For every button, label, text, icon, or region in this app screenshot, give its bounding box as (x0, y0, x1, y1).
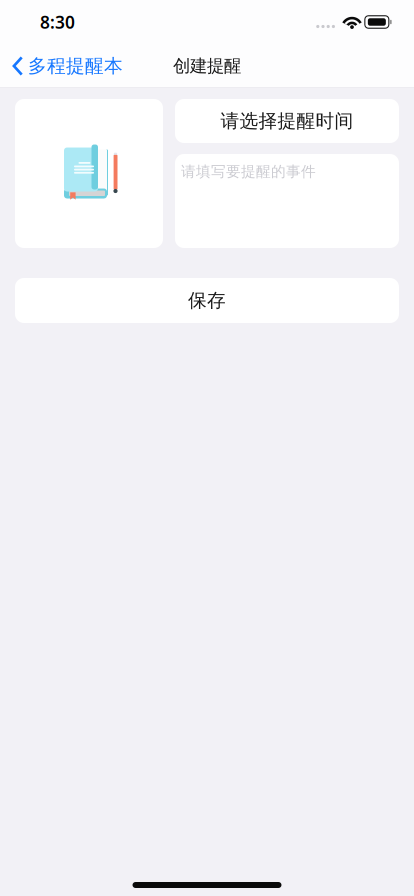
button[interactable]: 请选择提醒时间 (175, 99, 399, 143)
staticText: 8:30 (40, 10, 75, 33)
button[interactable]: 多程提醒本 (0, 44, 131, 88)
staticText: 创建提醒 (173, 55, 241, 77)
button[interactable]: 请填写要提醒的事件 (175, 154, 399, 248)
staticText: 请选择提醒时间 (220, 109, 353, 132)
staticText: 请填写要提醒的事件 (181, 162, 316, 180)
staticText: 保存 (188, 289, 226, 312)
staticText: 多程提醒本 (28, 54, 123, 77)
button[interactable]: 保存 (15, 278, 399, 323)
